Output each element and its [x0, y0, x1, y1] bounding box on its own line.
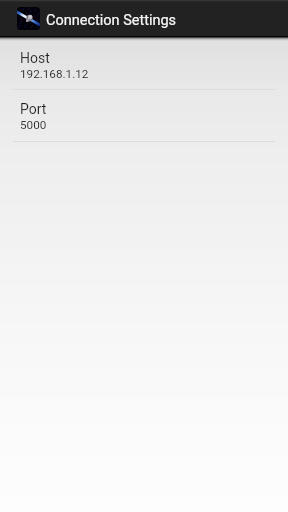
staticText: Connection Settings	[46, 12, 177, 29]
button[interactable]: Port	[0, 88, 288, 142]
staticText: 192.168.1.12	[20, 67, 89, 81]
staticText: 5000	[20, 118, 47, 132]
staticText: Host	[20, 50, 50, 66]
button[interactable]: Host	[0, 37, 288, 90]
staticText: Port	[20, 101, 47, 117]
button[interactable]: App icon, navigate up	[17, 7, 40, 30]
